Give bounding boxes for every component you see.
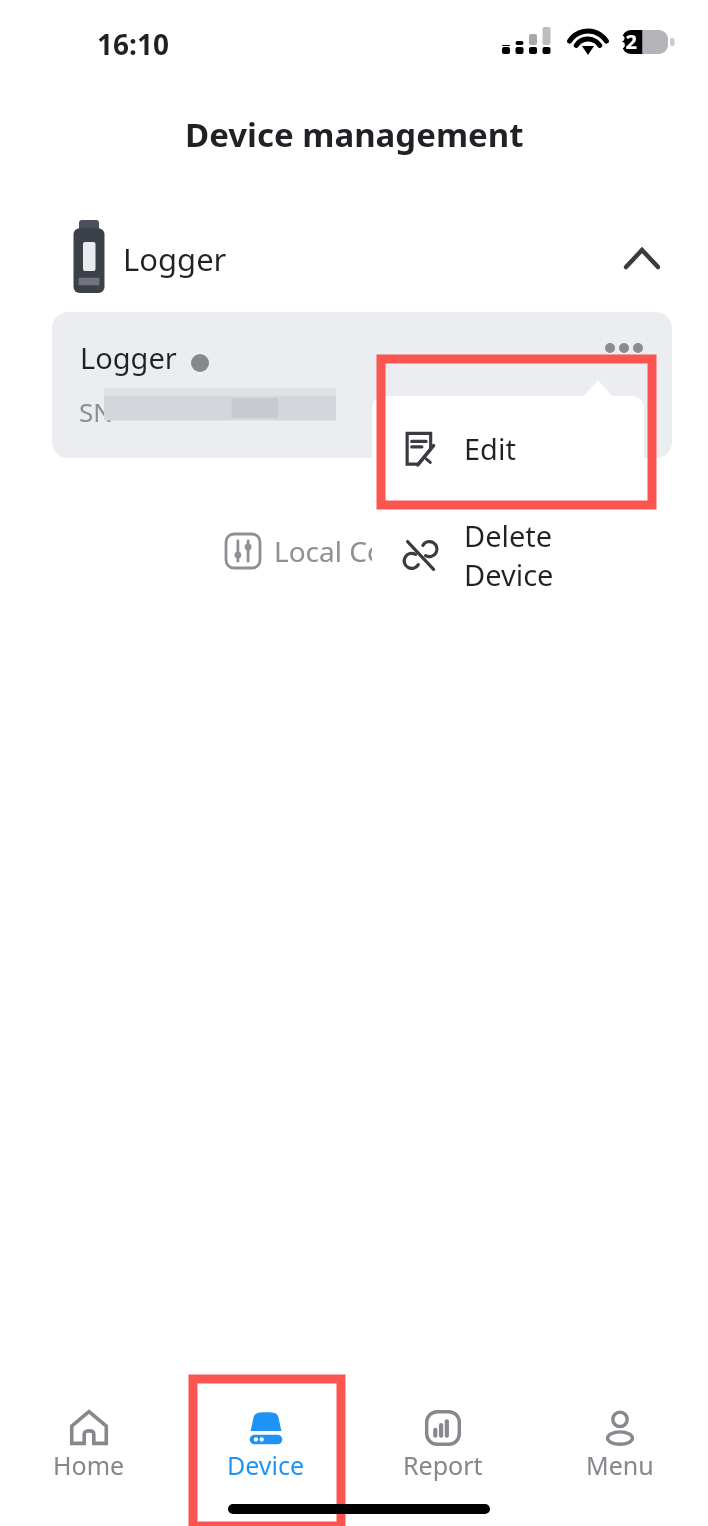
staticText: Local Config	[274, 532, 436, 570]
staticText: Report	[403, 1448, 483, 1482]
staticText: Edit	[464, 429, 516, 468]
button[interactable]: Device	[177, 1390, 354, 1500]
staticText: Device management	[185, 112, 524, 157]
staticText: 16:10	[97, 25, 169, 63]
button[interactable]: Logger	[26, 190, 682, 478]
button[interactable]: Report	[354, 1390, 531, 1500]
staticText: SN	[79, 394, 114, 429]
button[interactable]: Logger	[52, 312, 672, 458]
button[interactable]: Delete Device	[372, 502, 644, 607]
staticText: Home	[53, 1448, 125, 1482]
button[interactable]: Collapse	[614, 230, 670, 286]
staticText: 32	[614, 28, 637, 55]
button[interactable]: Local Config	[226, 528, 436, 574]
staticText: Delete Device	[464, 516, 644, 594]
staticText: Logger	[80, 338, 177, 377]
staticText: Device	[227, 1448, 305, 1482]
button[interactable]: Menu	[531, 1390, 708, 1500]
button[interactable]: Edit	[372, 396, 644, 501]
button[interactable]: Home	[0, 1390, 177, 1500]
staticText: Logger	[123, 238, 227, 280]
staticText: Menu	[586, 1448, 654, 1482]
